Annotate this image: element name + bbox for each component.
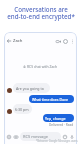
button[interactable]: RCS message [20,132,61,141]
button[interactable]: Are you going to Portland? [13,83,50,93]
button[interactable]: Camera [13,134,19,140]
staticText: What time does Dave land? [32,97,71,102]
staticText: *Between Google Messages users [36,139,78,143]
button[interactable]: More options [69,38,75,44]
button[interactable]: Back [6,38,12,44]
button[interactable]: Call [62,38,68,44]
button[interactable]: Emoji [62,134,68,140]
staticText: Zach [13,38,23,44]
button[interactable]: What time does Dave land? [29,95,74,103]
staticText: Are you going to Portland? [16,86,47,91]
staticText: RCS message [23,134,49,139]
staticText: Yep, change plans [45,116,72,121]
staticText: Conversations are end-to-end encrypted* [7,5,75,21]
button[interactable]: Voice message [69,134,75,140]
staticText: RCS chat with Zach [27,64,58,69]
staticText: Delivered · Read [49,123,74,127]
button[interactable]: Video call [55,38,61,44]
staticText: 6:30 pm [15,107,29,112]
button[interactable]: Yep, change plans [43,114,74,122]
button[interactable]: 6:30 pm [13,104,32,114]
button[interactable]: Add attachment [6,134,12,140]
